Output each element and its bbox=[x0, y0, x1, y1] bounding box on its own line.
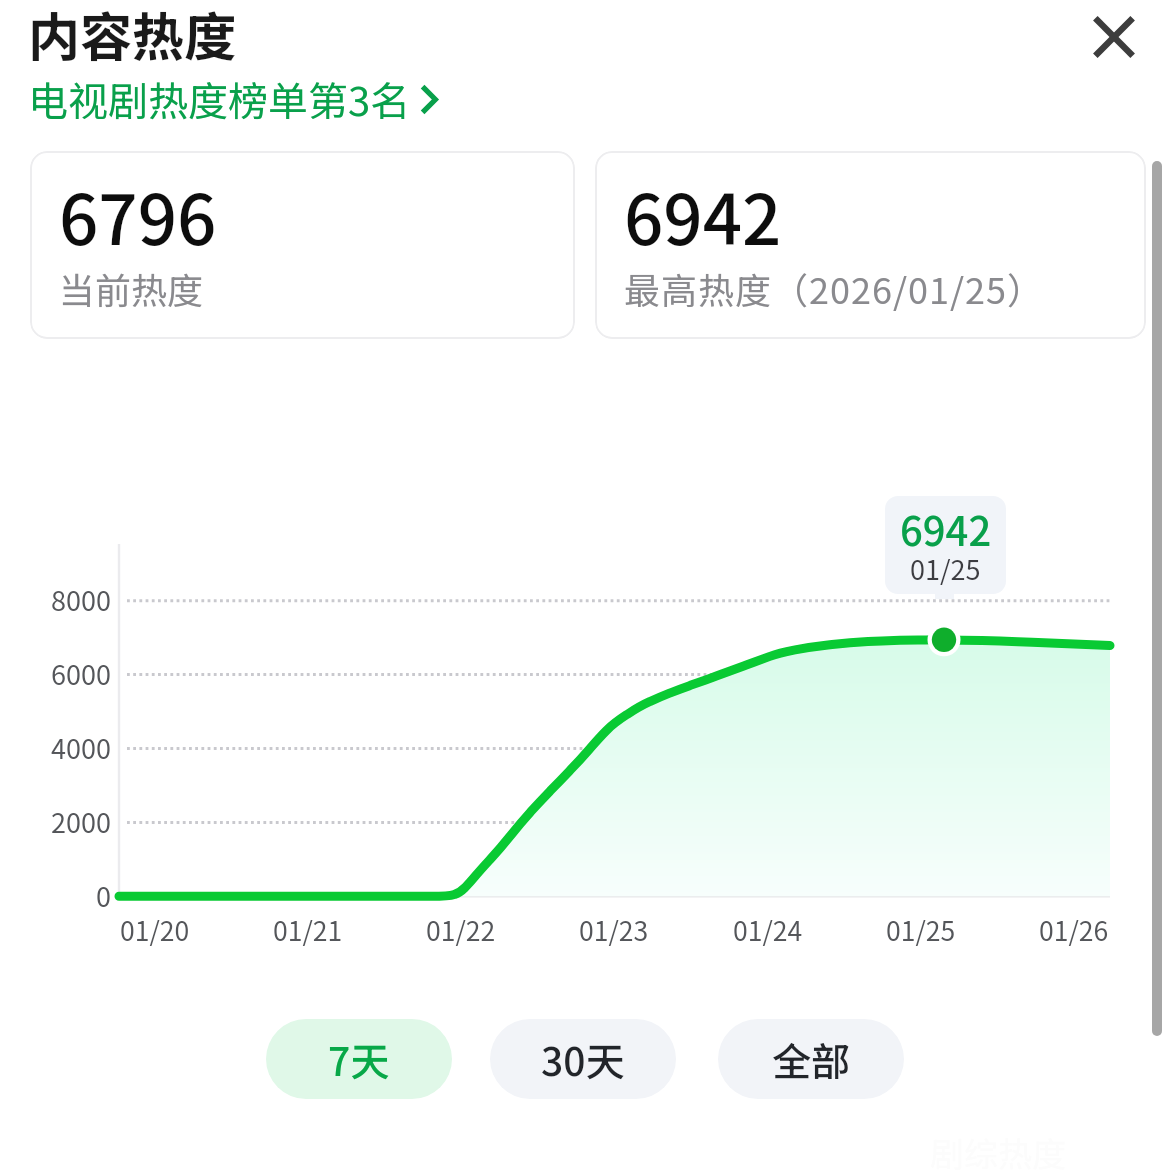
staticText: 内容热度 bbox=[28, 0, 237, 71]
staticText: 01/22 bbox=[426, 910, 496, 948]
staticText: 01/24 bbox=[733, 910, 803, 948]
button[interactable]: 6796 bbox=[30, 151, 575, 339]
button[interactable]: 全部 bbox=[718, 1019, 904, 1099]
staticText: 01/25 bbox=[910, 549, 981, 588]
button[interactable]: Close bbox=[1074, 0, 1154, 77]
staticText: 当前热度 bbox=[59, 262, 204, 314]
staticText: 01/21 bbox=[273, 910, 343, 948]
staticText: 6000 bbox=[51, 654, 111, 693]
staticText: 0 bbox=[96, 876, 111, 915]
staticText: 4000 bbox=[51, 728, 111, 767]
staticText: 01/23 bbox=[579, 910, 649, 948]
staticText: 6942 bbox=[900, 500, 992, 558]
staticText: 8000 bbox=[51, 580, 111, 619]
staticText: 01/26 bbox=[1039, 910, 1109, 948]
button[interactable]: 6942 bbox=[595, 151, 1146, 339]
staticText: 最高热度（2026/01/25） bbox=[624, 262, 1045, 314]
staticText: 01/20 bbox=[120, 910, 190, 948]
button[interactable]: 30天 bbox=[490, 1019, 676, 1099]
staticText: 6796 bbox=[59, 165, 217, 265]
staticText: 7天 bbox=[328, 1031, 390, 1087]
staticText: 30天 bbox=[541, 1031, 625, 1087]
staticText: 2000 bbox=[51, 802, 111, 841]
button[interactable]: 7天 bbox=[266, 1019, 452, 1099]
staticText: 6942 bbox=[624, 165, 782, 265]
staticText: 01/25 bbox=[886, 910, 956, 948]
button[interactable]: 电视剧热度榜单第3名 bbox=[28, 70, 446, 128]
staticText: 电视剧热度榜单第3名 bbox=[28, 70, 411, 128]
staticText: 全部 bbox=[772, 1031, 851, 1087]
